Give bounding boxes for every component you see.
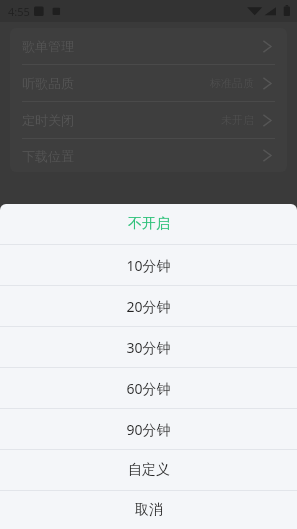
button[interactable]: 20分钟 [0,286,297,326]
button[interactable]: 不开启 [0,204,297,244]
button[interactable]: 30分钟 [0,327,297,367]
staticText: 未开启 [221,113,254,127]
button[interactable]: 60分钟 [0,368,297,408]
staticText: 听歌品质 [22,75,74,91]
staticText: 取消 [135,501,163,519]
staticText: 60分钟 [126,379,171,398]
staticText: 自定义 [128,461,170,479]
staticText: 下载位置 [22,148,74,164]
staticText: 90分钟 [126,420,171,439]
staticText: 10分钟 [126,256,171,275]
button[interactable]: 取消 [0,491,297,529]
button[interactable]: 10分钟 [0,245,297,285]
staticText: 30分钟 [126,338,171,357]
staticText: 定时关闭 [22,112,74,128]
staticText: 不开启 [128,215,170,233]
staticText: 20分钟 [126,297,171,316]
staticText: 4:55 [8,4,30,19]
staticText: 标准品质 [210,76,254,90]
staticText: 歌单管理 [22,38,74,54]
button[interactable]: 自定义 [0,450,297,490]
button[interactable]: 90分钟 [0,409,297,449]
